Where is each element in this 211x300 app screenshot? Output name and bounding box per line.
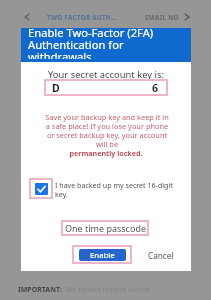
staticText: Save your backup key and keep it in a sa… (44, 112, 170, 149)
button[interactable]: Enable (79, 249, 126, 261)
button[interactable]: I have backed up my key (29, 178, 53, 199)
staticText: 6 (152, 81, 159, 95)
staticText: Your secret account key is: (21, 68, 191, 81)
staticText: D (52, 81, 60, 95)
staticText: TWO FACTOR AUTH… (47, 13, 117, 21)
staticText: permanently locked. (21, 148, 191, 158)
button[interactable]: Cancel (145, 247, 177, 264)
staticText: I have backed up my secret 16-digit key. (55, 180, 177, 199)
button[interactable]: Back (22, 12, 32, 22)
staticText: We cannot restore access (66, 285, 150, 295)
staticText: Enable Two-Factor (2FA) Authentication f… (28, 25, 176, 59)
button[interactable]: One time passcode (61, 220, 149, 236)
staticText: IMPORTANT: (18, 285, 62, 295)
staticText: One time passcode (65, 222, 146, 234)
staticText: Cancel (148, 250, 174, 261)
staticText: EMAIL NO (145, 13, 179, 21)
staticText: Enable (90, 250, 115, 261)
